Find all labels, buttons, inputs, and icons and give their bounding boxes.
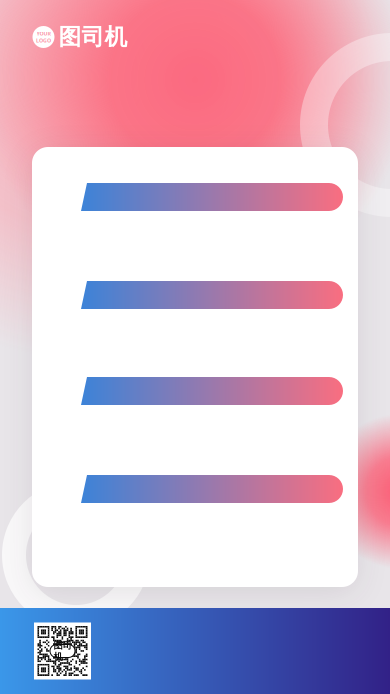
- staticText: 图司机: [53, 639, 71, 662]
- button[interactable]: YOUR: [32, 23, 127, 51]
- staticText: LOGO: [36, 37, 51, 44]
- staticText: YOUR: [36, 30, 50, 37]
- staticText: 图司机: [58, 23, 127, 51]
